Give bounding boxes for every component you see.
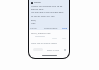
button[interactable]: Reply in chat: [47, 49, 59, 52]
staticText: to you as soon as I can.: [31, 15, 55, 18]
staticText: Got it, thanks a lot!: [31, 32, 51, 35]
button[interactable]: Gemini: [31, 1, 41, 4]
staticText: Best,: [31, 19, 37, 22]
staticText: Gemini: [34, 1, 41, 4]
button[interactable]: Send: [62, 27, 68, 30]
staticText: Want me to draft a reply?: [31, 42, 57, 45]
staticText: Alex: [31, 22, 36, 25]
button[interactable]: Cancel: [30, 27, 37, 30]
button[interactable]: Choose reply: [44, 27, 58, 30]
staticText: glad to help: [31, 8, 44, 11]
staticText: Thanks for reaching out! I'd be: [31, 5, 63, 8]
staticText: Let me take a look and get back: [31, 11, 64, 14]
